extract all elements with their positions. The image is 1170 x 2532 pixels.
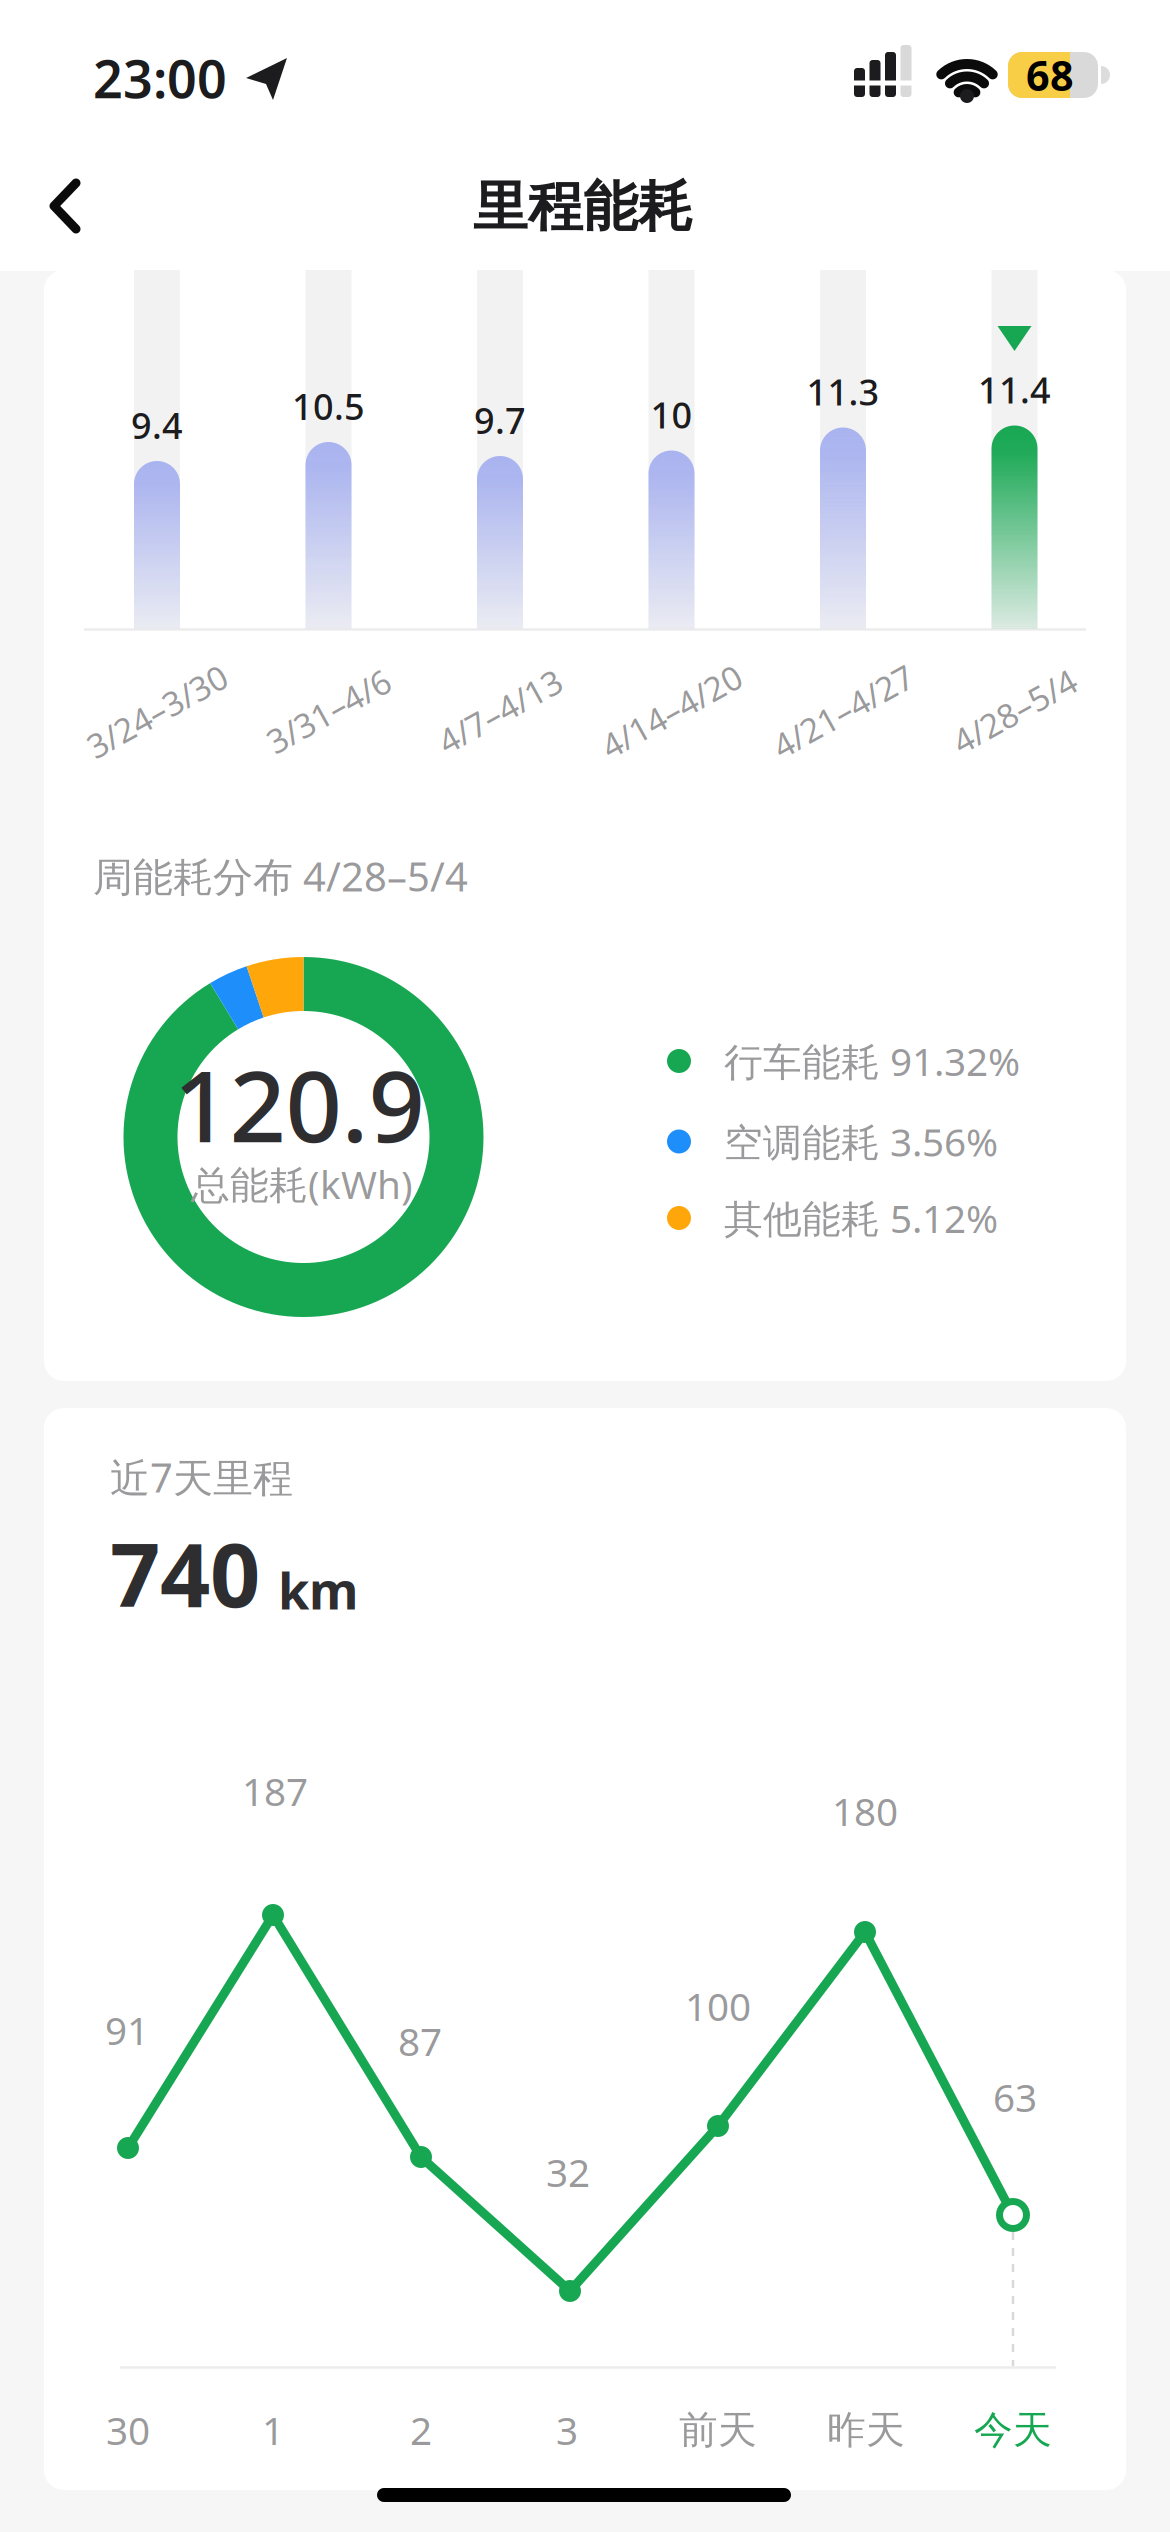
staticText: 63: [993, 2071, 1037, 2123]
staticText: 30: [106, 2404, 150, 2456]
staticText: 空调能耗 3.56%: [724, 1116, 998, 1167]
staticText: 100: [685, 1980, 751, 2032]
staticText: 91: [105, 2004, 149, 2056]
staticText: 4/14–4/20: [594, 689, 749, 733]
button[interactable]: [134, 270, 180, 629]
staticText: 1: [262, 2404, 284, 2456]
staticText: 周能耗分布 4/28–5/4: [93, 849, 468, 902]
staticText: 3/24–3/30: [79, 689, 234, 733]
staticText: 32: [546, 2146, 590, 2198]
staticText: 今天: [974, 2406, 1052, 2454]
staticText: 行车能耗 91.32%: [724, 1035, 1020, 1087]
staticText: 87: [398, 2015, 442, 2067]
staticText: 68: [1026, 48, 1074, 102]
staticText: 10.5: [292, 382, 365, 430]
staticText: 180: [832, 1785, 898, 1837]
staticText: 4/7–4/13: [432, 689, 568, 733]
staticText: 近7天里程: [110, 1450, 293, 1503]
staticText: 4/28–5/4: [946, 689, 1082, 733]
staticText: 总能耗(kWh): [191, 1158, 413, 1210]
button[interactable]: [477, 270, 523, 629]
staticText: 昨天: [827, 2406, 905, 2454]
staticText: 3/31–4/6: [260, 689, 396, 733]
button[interactable]: [305, 270, 351, 629]
staticText: 740: [110, 1515, 260, 1631]
staticText: 里程能耗: [473, 173, 693, 240]
staticText: 23:00: [93, 43, 227, 113]
staticText: 120.9: [173, 1038, 424, 1169]
staticText: 11.3: [806, 368, 879, 415]
staticText: 9.4: [131, 401, 183, 449]
staticText: 10: [650, 391, 692, 438]
staticText: km: [278, 1556, 358, 1623]
staticText: 9.7: [474, 396, 526, 444]
staticText: 前天: [679, 2406, 757, 2454]
button[interactable]: [648, 270, 694, 629]
button[interactable]: [26, 161, 106, 251]
staticText: 187: [242, 1765, 308, 1817]
staticText: 其他能耗 5.12%: [724, 1192, 998, 1244]
button[interactable]: [991, 270, 1037, 629]
staticText: 4/21–4/27: [765, 689, 920, 733]
staticText: 3: [556, 2404, 578, 2456]
staticText: 2: [410, 2404, 432, 2456]
staticText: 11.4: [978, 366, 1051, 413]
button[interactable]: [820, 270, 866, 629]
